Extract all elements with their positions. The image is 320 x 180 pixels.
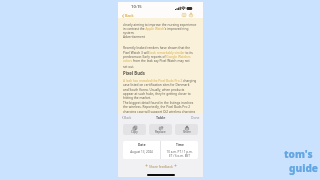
staticText: clearly aiming to improve the nursing ex… bbox=[123, 23, 197, 27]
staticText: Replace bbox=[155, 130, 166, 134]
staticText: predecessor. Early reports of Google Wat… bbox=[123, 55, 191, 59]
staticText: system. bbox=[123, 31, 135, 35]
button[interactable]: Back bbox=[120, 13, 135, 18]
staticText: Share feedback bbox=[149, 164, 173, 168]
staticText: The biggest detail found in the listings… bbox=[123, 101, 194, 105]
staticText: Copy bbox=[131, 130, 138, 134]
staticText: Advertisement bbox=[123, 35, 145, 39]
staticText: appear at such hubs, they're getting clo… bbox=[123, 92, 191, 96]
staticText: in contrast the Apple Watch's improved r… bbox=[123, 27, 189, 31]
staticText: Share bbox=[183, 130, 191, 134]
button[interactable]: Share bbox=[175, 124, 198, 135]
staticText: A leak has revealed the Pixel Buds Pro 2… bbox=[123, 79, 197, 83]
staticText: Recently leaked renders have shown that … bbox=[123, 46, 191, 50]
staticText: hitting the market. bbox=[123, 96, 152, 100]
staticText: charging case will support Qi2 wireless … bbox=[123, 110, 196, 114]
button[interactable]: Copy bbox=[123, 124, 146, 135]
staticText: tom's bbox=[284, 147, 313, 161]
button[interactable]: Done bbox=[191, 115, 200, 119]
staticText: Table bbox=[156, 115, 166, 120]
staticText: Back bbox=[125, 13, 134, 18]
staticText: Time bbox=[176, 143, 184, 147]
staticText: Date bbox=[138, 143, 146, 147]
button[interactable]: Share feedback bbox=[118, 163, 203, 168]
staticText: Back bbox=[124, 115, 132, 119]
button[interactable]: Share bbox=[188, 12, 194, 18]
staticText: case listed on certification sites for D… bbox=[123, 83, 190, 87]
staticText: the wireless. Reportedly, the Pixel Buds… bbox=[123, 105, 191, 109]
staticText: 10:15 bbox=[131, 4, 142, 10]
staticText: Pixel Buds bbox=[123, 70, 145, 76]
button[interactable]: Back bbox=[121, 115, 132, 119]
staticText: colors from the leak say Pixel Watch may… bbox=[123, 59, 190, 63]
button[interactable]: Reader view bbox=[181, 12, 187, 18]
staticText: August 13, 2024 bbox=[130, 150, 153, 154]
staticText: 10 a.m. PT / 1 p.m. ET / 6 p.m. BST bbox=[166, 150, 193, 157]
staticText: Pixel Watch 3 will look remarkably simil… bbox=[123, 51, 193, 55]
staticText: and South Korea. Usually, when products bbox=[123, 88, 185, 92]
staticText: guide bbox=[289, 161, 318, 175]
staticText: set out. bbox=[123, 65, 135, 69]
button[interactable]: Replace bbox=[149, 124, 172, 135]
